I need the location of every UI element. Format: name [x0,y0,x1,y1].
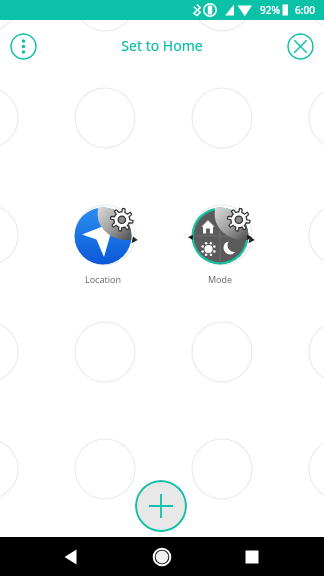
button[interactable]: Back [46,542,96,572]
staticText: Location [63,273,143,285]
button[interactable]: Close [287,33,314,60]
button[interactable]: Mode [180,200,260,284]
button[interactable]: Recents [227,542,277,572]
button[interactable]: More options [10,33,37,60]
staticText: Set to Home [116,36,208,55]
staticText: 92% [260,3,280,17]
button[interactable]: Location [63,200,143,284]
button[interactable]: Add [135,480,187,532]
staticText: 6:00 [295,3,315,17]
button[interactable]: Home [137,542,187,572]
staticText: Mode [180,273,260,285]
